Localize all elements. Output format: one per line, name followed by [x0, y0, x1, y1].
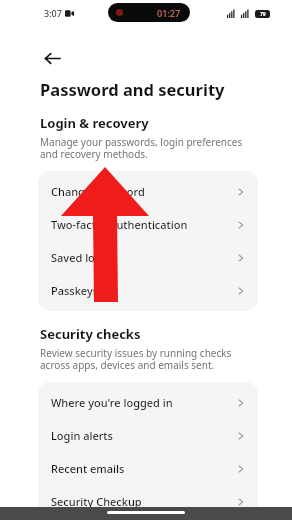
button[interactable]: Recent emails [38, 452, 258, 485]
staticText: 3:07 [44, 7, 62, 19]
staticText: Passkeys [51, 283, 237, 298]
staticText: Review security issues by running checks… [40, 346, 256, 372]
staticText: Security Checkup [51, 494, 237, 509]
button[interactable]: Passkeys [38, 274, 258, 307]
button[interactable]: Login alerts [38, 419, 258, 452]
staticText: Change password [51, 184, 237, 199]
button[interactable]: Saved login [38, 241, 258, 274]
button[interactable]: Where you're logged in [38, 386, 258, 419]
staticText: 01:27 [157, 7, 181, 19]
staticText: Login & recovery [40, 114, 149, 132]
staticText: 79 [260, 11, 266, 18]
staticText: Login alerts [51, 428, 237, 443]
staticText: Two-factor authentication [51, 217, 237, 232]
staticText: Where you're logged in [51, 395, 237, 410]
button[interactable]: Change password [38, 175, 258, 208]
staticText: Security checks [40, 325, 141, 343]
button[interactable]: Security Checkup [38, 485, 258, 518]
staticText: Recent emails [51, 461, 237, 476]
staticText: Saved login [51, 250, 237, 265]
staticText: Manage your passwords, login preferences… [40, 135, 256, 161]
button[interactable]: Two-factor authentication [38, 208, 258, 241]
button[interactable]: Back [38, 44, 66, 72]
staticText: Password and security [40, 78, 225, 100]
